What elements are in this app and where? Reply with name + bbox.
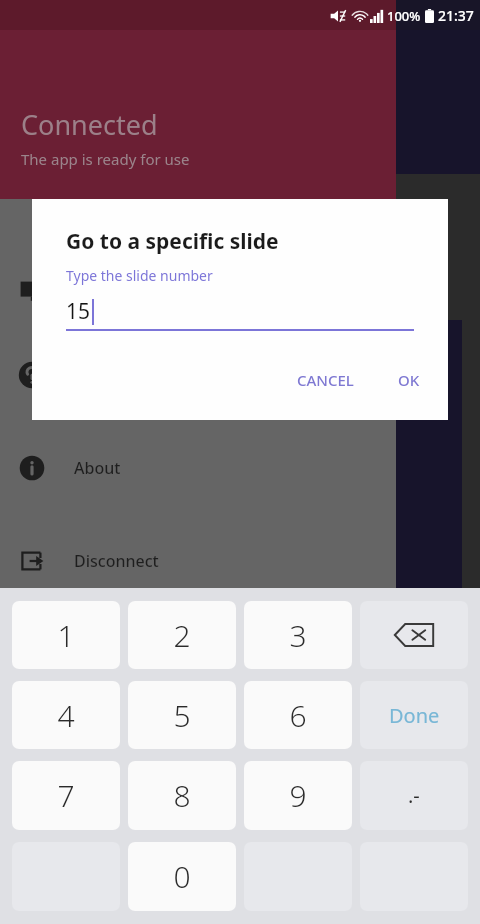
staticText: 0: [173, 856, 191, 897]
button[interactable]: Dot and dash: [360, 761, 468, 830]
staticText: 9: [289, 775, 307, 816]
staticText: 8: [173, 775, 191, 816]
button[interactable]: 15: [66, 293, 414, 329]
button[interactable]: 6: [244, 681, 352, 749]
staticText: 21:37: [438, 6, 474, 25]
button[interactable]: Backspace: [360, 601, 468, 669]
staticText: The app is ready for use: [21, 149, 190, 169]
staticText: 100%: [387, 7, 421, 25]
staticText: Done: [389, 702, 440, 729]
button[interactable]: Slides: [0, 266, 396, 314]
staticText: .-: [408, 782, 420, 809]
staticText: About: [74, 457, 121, 479]
button[interactable]: 8: [128, 761, 236, 830]
staticText: 15: [66, 297, 91, 326]
staticText: 4: [57, 695, 75, 736]
staticText: 6: [289, 695, 307, 736]
button[interactable]: About: [0, 444, 396, 492]
button[interactable]: 2: [128, 601, 236, 669]
button[interactable]: 4: [12, 681, 120, 749]
staticText: 7: [57, 775, 75, 816]
staticText: Connected: [21, 106, 158, 143]
button[interactable]: Disconnect: [0, 537, 396, 585]
button[interactable]: 0: [128, 842, 236, 911]
button[interactable]: 9: [244, 761, 352, 830]
staticText: Disconnect: [74, 550, 159, 572]
button[interactable]: OK: [388, 362, 430, 398]
staticText: Type the slide number: [66, 266, 213, 285]
staticText: Slides: [74, 279, 119, 301]
button[interactable]: 7: [12, 761, 120, 830]
staticText: CANCEL: [297, 370, 354, 390]
staticText: 5: [173, 695, 191, 736]
staticText: Go to a specific slide: [66, 227, 279, 256]
staticText: 3: [289, 615, 307, 656]
button[interactable]: CANCEL: [287, 362, 364, 398]
button[interactable]: 3: [244, 601, 352, 669]
button[interactable]: Help: [0, 351, 396, 399]
button[interactable]: 5: [128, 681, 236, 749]
button[interactable]: Done: [360, 681, 468, 749]
staticText: 1: [57, 615, 75, 656]
staticText: 2: [173, 615, 191, 656]
button[interactable]: 1: [12, 601, 120, 669]
staticText: OK: [398, 370, 420, 390]
